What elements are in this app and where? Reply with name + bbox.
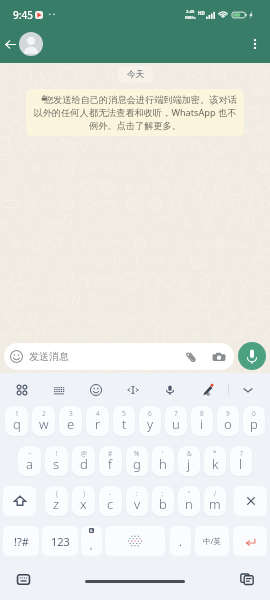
button[interactable]: 7: [165, 406, 187, 436]
staticText: !: [56, 449, 58, 458]
button[interactable]: #: [99, 446, 122, 476]
button[interactable]: Keyboard layout: [51, 382, 67, 398]
staticText: 8: [200, 409, 204, 418]
button[interactable]: 1: [5, 406, 28, 436]
button[interactable]: ): [72, 486, 95, 516]
staticText: ,: [90, 539, 93, 551]
button[interactable]: Back: [0, 34, 20, 54]
button[interactable]: Text editing: [125, 382, 141, 398]
staticText: ?: [240, 449, 243, 458]
staticText: n: [185, 495, 193, 513]
staticText: ): [83, 489, 85, 498]
button[interactable]: Enter: [233, 526, 267, 556]
button[interactable]: 0: [243, 406, 265, 436]
button[interactable]: Apps: [14, 382, 30, 398]
button[interactable]: Profile: [19, 32, 43, 56]
button[interactable]: Emoji: [88, 382, 104, 398]
button[interactable]: 3: [59, 406, 82, 436]
staticText: x: [80, 495, 87, 513]
button[interactable]: Period: [170, 526, 191, 556]
staticText: g: [133, 455, 141, 473]
button[interactable]: !: [45, 446, 68, 476]
button[interactable]: /: [204, 486, 226, 516]
staticText: e: [67, 415, 75, 433]
staticText: q: [13, 415, 21, 433]
staticText: A: [90, 528, 93, 533]
button[interactable]: 今天: [118, 66, 153, 83]
button[interactable]: 4: [86, 406, 109, 436]
button[interactable]: Attach: [183, 349, 198, 364]
button[interactable]: ~: [18, 446, 41, 476]
staticText: %: [134, 449, 140, 458]
button[interactable]: Record voice message: [238, 342, 266, 370]
staticText: r: [95, 415, 101, 433]
staticText: s: [53, 455, 60, 473]
button[interactable]: 2: [32, 406, 55, 436]
staticText: #: [108, 449, 113, 458]
button[interactable]: Hide keyboard: [240, 382, 256, 398]
button[interactable]: %: [126, 446, 148, 476]
button[interactable]: 9: [217, 406, 239, 436]
staticText: h: [159, 455, 167, 473]
staticText: 5: [122, 409, 126, 418]
button[interactable]: ": [178, 486, 200, 516]
button[interactable]: Voice input: [162, 382, 178, 398]
button[interactable]: Switch language: [195, 526, 229, 556]
button[interactable]: ;: [152, 486, 174, 516]
staticText: .: [179, 534, 182, 549]
staticText: 您发送给自己的消息会进行端到端加密。该对话以外的任何人都无法查看和收听，What…: [32, 93, 238, 131]
staticText: 今天: [127, 69, 144, 80]
staticText: ~: [28, 449, 32, 458]
staticText: 9:45: [13, 8, 33, 22]
staticText: -: [109, 489, 112, 498]
staticText: 3: [69, 409, 73, 418]
staticText: 1: [15, 409, 19, 418]
button[interactable]: 6: [139, 406, 161, 436]
staticText: 6: [148, 409, 152, 418]
button[interactable]: -: [99, 486, 122, 516]
staticText: 0: [252, 409, 256, 418]
button[interactable]: 发送消息: [4, 343, 234, 370]
staticText: d: [80, 455, 88, 473]
button[interactable]: Switch input method: [13, 569, 33, 589]
staticText: ': [162, 449, 164, 458]
staticText: /: [214, 489, 217, 498]
button[interactable]: More options: [243, 32, 267, 56]
button[interactable]: ': [152, 446, 174, 476]
button[interactable]: (: [45, 486, 68, 516]
staticText: 2: [42, 409, 46, 418]
staticText: j: [187, 455, 191, 473]
staticText: 4: [96, 409, 100, 418]
button[interactable]: Handwriting: [199, 382, 215, 398]
staticText: HD: [198, 10, 205, 16]
button[interactable]: Numbers: [42, 526, 78, 556]
button[interactable]: Symbols: [3, 526, 39, 556]
button[interactable]: :: [126, 486, 148, 516]
button[interactable]: Backspace: [234, 486, 267, 516]
staticText: f: [108, 455, 113, 473]
staticText: !?#: [14, 534, 29, 549]
button[interactable]: Camera: [211, 349, 226, 364]
staticText: 发送消息: [29, 350, 69, 363]
button[interactable]: @: [72, 446, 95, 476]
staticText: 2.45: [186, 9, 195, 15]
button[interactable]: &: [178, 446, 200, 476]
staticText: *: [213, 449, 217, 458]
button[interactable]: Space: [105, 526, 165, 556]
button[interactable]: 8: [191, 406, 213, 436]
button[interactable]: Clipboard: [237, 569, 257, 589]
button[interactable]: Comma: [81, 526, 102, 556]
staticText: 9: [226, 409, 230, 418]
button[interactable]: ?: [230, 446, 252, 476]
staticText: y: [147, 415, 154, 433]
staticText: ;: [162, 489, 164, 498]
staticText: v: [134, 495, 141, 513]
button[interactable]: 5: [113, 406, 135, 436]
button[interactable]: Shift: [3, 486, 36, 516]
button[interactable]: 您发送给自己的消息会进行端到端加密。该对话以外的任何人都无法查看和收听，What…: [26, 89, 244, 136]
staticText: 中/英: [203, 536, 221, 546]
staticText: 7: [174, 409, 178, 418]
staticText: a: [26, 455, 33, 473]
button[interactable]: *: [204, 446, 226, 476]
staticText: :: [136, 489, 138, 498]
